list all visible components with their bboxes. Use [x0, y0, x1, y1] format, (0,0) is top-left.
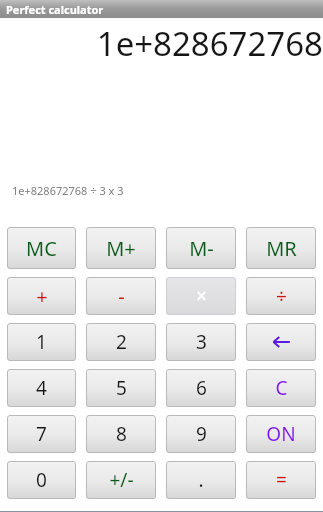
button[interactable]: 4 [7, 369, 76, 407]
staticText: ÷ [276, 283, 287, 309]
button[interactable]: Plus [7, 277, 76, 315]
staticText: M+ [106, 235, 136, 262]
staticText: 4 [36, 375, 47, 401]
staticText: M- [189, 235, 214, 262]
staticText: Perfect calculator [6, 2, 104, 17]
staticText: 8 [116, 421, 127, 447]
staticText: MC [26, 235, 57, 262]
button[interactable]: M- [166, 227, 236, 269]
staticText: = [276, 467, 287, 493]
button[interactable]: 3 [166, 323, 236, 361]
staticText: 5 [116, 375, 127, 401]
button[interactable]: 7 [7, 415, 76, 453]
staticText: 1 [36, 329, 47, 355]
button[interactable]: Backspace [246, 323, 316, 361]
button[interactable]: 8 [86, 415, 156, 453]
button[interactable]: 5 [86, 369, 156, 407]
staticText: + [36, 283, 48, 310]
staticText: 6 [196, 375, 207, 401]
staticText: 1e+828672768 [96, 21, 323, 66]
button[interactable]: +/- [86, 461, 156, 499]
button[interactable]: ON [246, 415, 316, 453]
button[interactable]: Minus [86, 277, 156, 315]
button[interactable]: MR [246, 227, 316, 269]
staticText: 9 [196, 421, 207, 447]
button[interactable]: Equals [246, 461, 316, 499]
button[interactable]: 1 [7, 323, 76, 361]
staticText: MR [266, 235, 297, 262]
button[interactable]: M+ [86, 227, 156, 269]
button[interactable]: 9 [166, 415, 236, 453]
button[interactable]: Divide [246, 277, 316, 315]
staticText: 3 [196, 329, 207, 355]
button[interactable]: 2 [86, 323, 156, 361]
staticText: +/- [109, 467, 134, 493]
button[interactable]: 6 [166, 369, 236, 407]
staticText: - [118, 283, 125, 310]
staticText: × [196, 283, 207, 309]
staticText: C [275, 375, 288, 401]
staticText: 2 [116, 329, 127, 355]
staticText: ON [266, 421, 296, 447]
button[interactable]: C [246, 369, 316, 407]
staticText: 7 [36, 421, 47, 447]
button[interactable]: . [166, 461, 236, 499]
staticText: . [198, 467, 204, 493]
staticText: 0 [36, 467, 47, 493]
button[interactable]: 0 [7, 461, 76, 499]
button[interactable]: Multiply [166, 277, 236, 315]
button[interactable]: MC [7, 227, 76, 269]
staticText: 1e+828672768 ÷ 3 x 3 [12, 183, 124, 198]
